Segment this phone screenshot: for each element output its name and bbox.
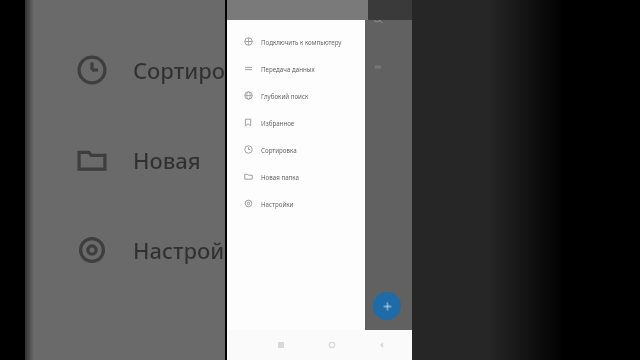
button[interactable]: Глубокий поиск — [227, 82, 365, 109]
button[interactable]: Настройки — [227, 190, 365, 217]
button[interactable]: Search — [371, 12, 385, 26]
staticText: Новая папка — [133, 145, 225, 175]
staticText: Глубокий поиск — [261, 92, 309, 100]
button[interactable]: Новая папка — [227, 163, 365, 190]
staticText: Настройки — [261, 200, 294, 208]
staticText: Избранное — [261, 119, 295, 127]
button[interactable]: Избранное — [227, 109, 365, 136]
button[interactable]: More options — [373, 62, 383, 72]
button[interactable]: Сортировка — [227, 136, 365, 163]
button[interactable]: Recents — [273, 337, 289, 353]
button[interactable]: Подключить к компьютеру — [227, 28, 365, 55]
button[interactable]: Add — [373, 292, 401, 320]
staticText: Сортировка — [133, 55, 225, 85]
staticText: Новая папка — [261, 173, 299, 181]
staticText: Подключить к компьютеру — [261, 38, 342, 46]
staticText: Настройки — [133, 235, 225, 265]
button[interactable]: Home — [324, 337, 340, 353]
button[interactable]: Back — [374, 337, 390, 353]
staticText: Передача данных — [261, 65, 315, 73]
button[interactable]: Передача данных — [227, 55, 365, 82]
staticText: Сортировка — [261, 146, 297, 154]
